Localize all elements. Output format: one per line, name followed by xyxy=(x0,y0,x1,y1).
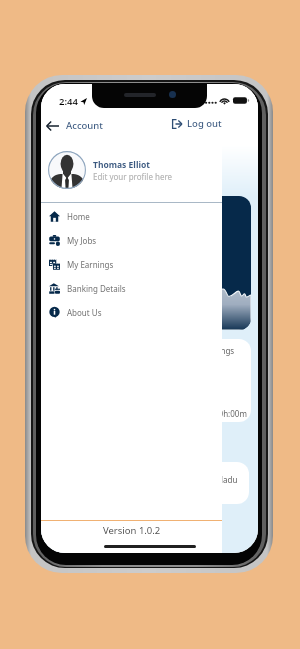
button[interactable]: Log out xyxy=(164,114,258,137)
staticText: Log out xyxy=(187,117,222,130)
staticText: Banking Details xyxy=(67,283,126,294)
other: Back xyxy=(46,121,59,131)
staticText: Tamil Nadu xyxy=(195,474,238,485)
staticText: Edit your profile here xyxy=(93,171,173,182)
button[interactable]: Back xyxy=(41,114,111,137)
staticText: 2:44 xyxy=(59,95,78,108)
button[interactable]: Thomas Elliot xyxy=(41,140,222,202)
staticText: About Us xyxy=(67,307,102,318)
button[interactable]: My Earnings xyxy=(41,252,222,276)
staticText: Version 1.0.2 xyxy=(103,524,161,537)
button[interactable]: Banking Details xyxy=(41,276,222,300)
button[interactable]: My Jobs xyxy=(41,228,222,252)
button[interactable]: About Us xyxy=(41,300,222,324)
staticText: My Earnings xyxy=(67,259,114,270)
staticText: My Jobs xyxy=(67,235,97,246)
staticText: Home xyxy=(67,211,90,222)
staticText: 00h:00m xyxy=(214,408,247,419)
staticText: Total Earnings xyxy=(181,345,235,356)
staticText: Thomas Elliot xyxy=(93,159,150,171)
staticText: Account xyxy=(66,119,103,132)
button[interactable]: Home xyxy=(41,204,222,228)
